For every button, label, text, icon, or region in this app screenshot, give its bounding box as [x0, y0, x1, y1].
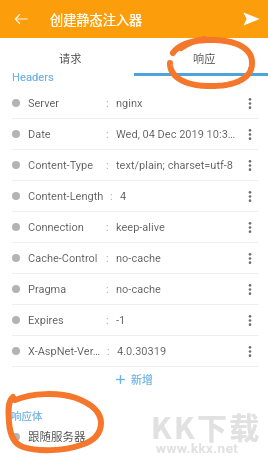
button[interactable]: More options: [238, 150, 268, 180]
staticText: text/plain; charset=utf-8: [116, 159, 234, 172]
button[interactable]: 新增: [0, 367, 268, 391]
staticText: :: [106, 283, 109, 296]
staticText: keep-alive: [116, 221, 165, 234]
button[interactable]: More options: [238, 119, 268, 149]
staticText: Wed, 04 Dec 2019 10:3…: [116, 128, 236, 141]
staticText: 新增: [131, 371, 153, 387]
staticText: Pragma: [28, 283, 67, 296]
button[interactable]: More options: [238, 305, 268, 335]
staticText: 4.0.30319: [117, 345, 167, 358]
button[interactable]: Send: [234, 0, 268, 38]
staticText: 创建静态注入器: [50, 10, 143, 29]
staticText: Date: [28, 128, 51, 141]
button[interactable]: Back: [0, 0, 42, 38]
button[interactable]: More options: [238, 243, 268, 273]
staticText: :: [106, 252, 109, 265]
button[interactable]: More options: [238, 181, 268, 211]
staticText: X-AspNet-Ver…: [28, 345, 101, 358]
button[interactable]: Expires: [0, 305, 268, 335]
staticText: :: [110, 190, 113, 203]
staticText: 响应: [193, 50, 216, 66]
button[interactable]: Content-Type: [0, 150, 268, 180]
button[interactable]: X-AspNet-Ver…: [0, 336, 268, 366]
button[interactable]: More options: [238, 274, 268, 304]
staticText: no-cache: [116, 252, 161, 265]
button[interactable]: More options: [238, 88, 268, 118]
button[interactable]: Connection: [0, 212, 268, 242]
button[interactable]: 请求: [3, 40, 137, 76]
staticText: :: [106, 128, 109, 141]
button[interactable]: More options: [238, 336, 268, 366]
staticText: Expires: [28, 314, 64, 327]
button[interactable]: 跟随服务器: [0, 426, 268, 447]
staticText: no-cache: [116, 283, 161, 296]
staticText: KK下载: [151, 404, 262, 447]
staticText: Server: [28, 97, 60, 110]
staticText: 4: [120, 190, 127, 203]
staticText: Connection: [28, 221, 84, 234]
button[interactable]: Date: [0, 119, 268, 149]
staticText: -1: [116, 314, 126, 327]
staticText: Content-Type: [28, 159, 94, 172]
button[interactable]: Server: [0, 88, 268, 118]
staticText: 请求: [59, 50, 82, 66]
button[interactable]: 响应: [137, 40, 268, 76]
staticText: Headers: [12, 71, 54, 84]
staticText: :: [106, 159, 109, 172]
button[interactable]: More options: [238, 212, 268, 242]
button[interactable]: Pragma: [0, 274, 268, 304]
staticText: :: [106, 314, 109, 327]
staticText: www.kkx.net: [156, 440, 239, 456]
staticText: 响应体: [11, 408, 43, 423]
staticText: Content-Length: [28, 190, 104, 203]
staticText: 跟随服务器: [28, 428, 86, 445]
staticText: :: [107, 345, 110, 358]
staticText: nginx: [116, 97, 143, 110]
staticText: :: [106, 221, 109, 234]
staticText: Cache-Control: [28, 252, 98, 265]
button[interactable]: Content-Length: [0, 181, 268, 211]
button[interactable]: Cache-Control: [0, 243, 268, 273]
staticText: :: [106, 97, 109, 110]
